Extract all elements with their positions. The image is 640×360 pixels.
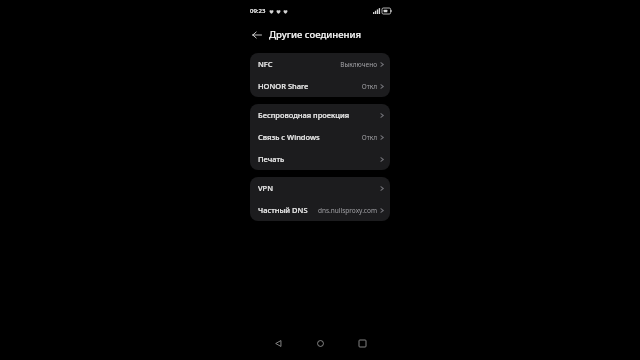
button[interactable]: Печать xyxy=(250,148,390,170)
button[interactable]: Обзор xyxy=(347,331,377,355)
button[interactable]: Назад xyxy=(263,331,293,355)
button[interactable]: VPN xyxy=(250,177,390,199)
button[interactable]: HONOR Share xyxy=(250,75,390,97)
staticText: Откл xyxy=(361,82,377,91)
staticText: 09:23 xyxy=(250,7,266,15)
button[interactable]: Беспроводная проекция xyxy=(250,104,390,126)
staticText: HONOR Share xyxy=(258,81,309,91)
staticText: VPN xyxy=(258,183,274,193)
staticText: Связь с Windows xyxy=(258,132,320,142)
staticText: Частный DNS xyxy=(258,205,308,215)
button[interactable]: Назад xyxy=(250,28,263,41)
staticText: Другие соединения xyxy=(269,28,362,41)
staticText: Беспроводная проекция xyxy=(258,110,350,120)
staticText: NFC xyxy=(258,59,273,69)
button[interactable]: NFC xyxy=(250,53,390,75)
button[interactable]: Связь с Windows xyxy=(250,126,390,148)
button[interactable]: Частный DNS xyxy=(250,199,390,221)
staticText: Откл xyxy=(361,133,377,142)
staticText: Печать xyxy=(258,154,285,164)
staticText: dns.nullsproxy.com xyxy=(317,206,377,215)
staticText: Выключено xyxy=(340,60,377,69)
button[interactable]: Домой xyxy=(305,331,335,355)
